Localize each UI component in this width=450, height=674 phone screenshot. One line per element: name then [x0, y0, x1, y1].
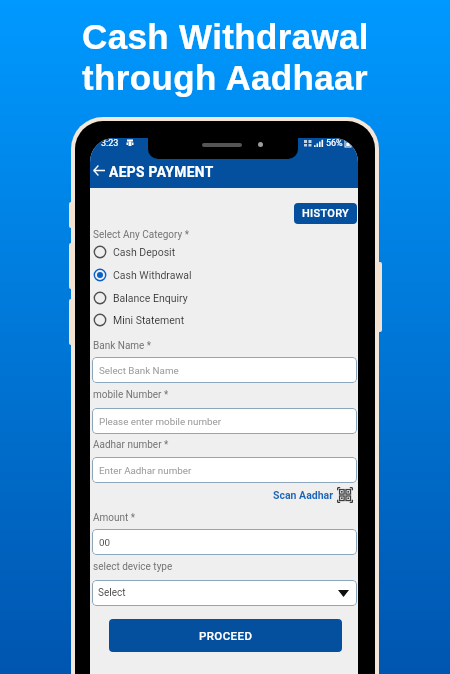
staticText: Cash Deposit: [113, 246, 176, 258]
button[interactable]: Back: [90, 160, 110, 181]
staticText: Aadhar number *: [93, 439, 169, 451]
button[interactable]: Please enter mobile number: [92, 408, 357, 434]
staticText: Select Bank Name: [99, 365, 179, 376]
button[interactable]: Mini Statement: [93, 309, 293, 331]
staticText: 00: [99, 537, 111, 548]
staticText: 56%: [326, 138, 343, 149]
staticText: mobile Number *: [93, 389, 169, 401]
button[interactable]: Select: [92, 580, 357, 606]
button[interactable]: Select Bank Name: [92, 357, 357, 383]
staticText: select device type: [93, 561, 173, 573]
staticText: Select: [98, 587, 126, 599]
staticText: Cash Withdrawal: [82, 17, 369, 56]
staticText: Mini Statement: [113, 314, 185, 326]
staticText: PROCEED: [199, 629, 253, 642]
button[interactable]: PROCEED: [109, 619, 342, 652]
staticText: Amount *: [93, 512, 136, 524]
button[interactable]: Cash Deposit: [93, 241, 293, 263]
staticText: Enter Aadhar number: [99, 465, 192, 476]
staticText: Scan Aadhar: [273, 489, 334, 501]
staticText: 3:23: [101, 138, 119, 149]
staticText: through Aadhaar: [82, 58, 368, 97]
button[interactable]: Enter Aadhar number: [92, 457, 357, 483]
staticText: Select Any Category *: [93, 229, 190, 241]
staticText: AEPS PAYMENT: [109, 164, 214, 180]
staticText: HISTORY: [302, 207, 350, 220]
staticText: Bank Name *: [93, 340, 152, 352]
button[interactable]: Cash Withdrawal: [93, 264, 293, 286]
staticText: Balance Enquiry: [113, 292, 188, 304]
button[interactable]: Balance Enquiry: [93, 287, 293, 309]
button[interactable]: HISTORY: [294, 203, 357, 224]
staticText: Cash Withdrawal: [113, 269, 192, 281]
button[interactable]: Scan Aadhar: [273, 487, 353, 503]
staticText: Please enter mobile number: [99, 416, 222, 427]
button[interactable]: 00: [92, 529, 357, 555]
